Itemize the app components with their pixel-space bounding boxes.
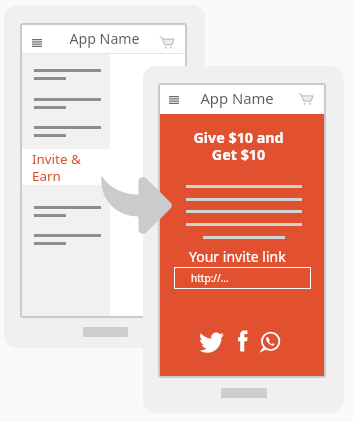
button[interactable] (22, 201, 110, 225)
button[interactable]: Shopping cart (158, 34, 176, 51)
staticText: Your invite link (189, 247, 286, 266)
button[interactable] (22, 64, 110, 88)
button[interactable]: Share on WhatsApp (256, 329, 282, 355)
button[interactable] (22, 229, 110, 253)
button[interactable]: Invite & Earn (22, 149, 110, 185)
button[interactable]: Share on Facebook (228, 328, 254, 354)
button[interactable] (22, 121, 110, 145)
staticText: App Name (200, 88, 274, 108)
staticText: Invite & Earn (32, 150, 81, 184)
button[interactable]: Open navigation menu (166, 92, 182, 108)
button[interactable] (22, 93, 110, 117)
button[interactable]: Share on Twitter (198, 329, 224, 355)
staticText: Give $10 and Get $10 (193, 128, 284, 165)
button[interactable]: Open navigation menu (29, 35, 45, 51)
button[interactable]: http://... (174, 267, 311, 289)
staticText: http://... (191, 271, 229, 285)
button[interactable]: Shopping cart (297, 91, 315, 107)
staticText: App Name (69, 29, 140, 48)
